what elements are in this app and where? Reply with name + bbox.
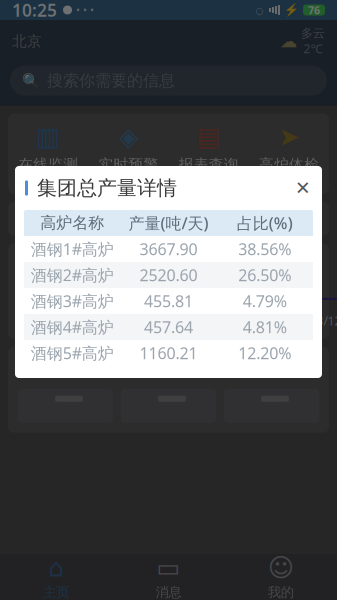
staticText: 12.20% — [238, 342, 291, 364]
staticText: 产量(吨/天) — [128, 212, 208, 234]
staticText: 10:25 — [12, 0, 57, 21]
staticText: 1160.21 — [139, 342, 197, 364]
button[interactable]: ⌂ — [0, 553, 112, 600]
staticText: 酒钢1#高炉 — [31, 238, 114, 260]
staticText: 2520.60 — [139, 264, 197, 286]
button[interactable]: 🔍 — [10, 66, 327, 96]
button[interactable]: ▤ — [168, 123, 249, 174]
button[interactable]: ➤ — [249, 123, 329, 174]
staticText: 3667.9 — [21, 281, 135, 329]
staticText: ◌ — [255, 0, 264, 20]
staticText: 酒钢4#高炉 — [31, 316, 114, 338]
staticText: 主页 — [43, 584, 69, 600]
staticText: ▼ — [306, 211, 316, 226]
staticText: 3667.90 — [139, 238, 197, 260]
staticText: 多云 — [301, 26, 325, 41]
staticText: ▤ — [197, 122, 221, 151]
staticText: ☺ — [268, 553, 294, 582]
staticText: 2℃ — [303, 41, 322, 57]
button[interactable]: ◈ — [88, 123, 168, 174]
staticText: 26.50% — [238, 264, 291, 286]
staticText: 酒钢3#高炉 — [31, 290, 114, 312]
staticText: 占比(%) — [237, 212, 293, 234]
staticText: 在线监测 — [18, 156, 78, 174]
button[interactable]: 酒钢1#高炉 — [8, 202, 329, 236]
staticText: ◈ — [119, 122, 138, 151]
staticText: 🔍 — [22, 72, 40, 89]
staticText: 酒钢5#高炉 — [31, 342, 114, 364]
staticText: 搜索你需要的信息 — [47, 71, 175, 90]
button[interactable]: ▥ — [8, 123, 88, 174]
staticText: 查看更多 — [256, 362, 316, 380]
staticText: 酒钢1#高炉 — [21, 207, 110, 230]
staticText: 38.56% — [238, 238, 291, 260]
staticText: 4.79% — [243, 290, 287, 312]
staticText: 03/12 — [309, 313, 337, 329]
staticText: 76 — [308, 3, 320, 17]
staticText: ⌂ — [48, 553, 64, 582]
staticText: 03/08 — [223, 313, 255, 329]
staticText: 2020-03-13 10:24:50 — [102, 360, 236, 380]
staticText: 455.81 — [144, 290, 193, 312]
button[interactable]: ▭ — [112, 553, 225, 600]
staticText: 03/06 — [180, 313, 212, 329]
staticText: 北京 — [12, 32, 42, 50]
staticText: ✕ — [295, 177, 311, 199]
button[interactable]: ☺ — [225, 553, 337, 600]
staticText: ⚡ — [284, 3, 299, 17]
staticText: 集团总产量详情 — [37, 176, 177, 200]
staticText: ☁ — [280, 31, 297, 51]
staticText: 在线监测 — [21, 357, 97, 380]
staticText: • • • — [76, 3, 94, 17]
staticText: 吨/天 — [139, 309, 167, 325]
staticText: 实时预警 — [98, 156, 158, 174]
staticText: 高炉体检 — [259, 156, 319, 174]
staticText: 报表查询 — [179, 156, 239, 174]
staticText: ▭ — [156, 553, 180, 582]
staticText: 高炉名称 — [40, 213, 104, 233]
staticText: 03/10 — [266, 313, 298, 329]
staticText: 457.64 — [144, 316, 193, 338]
staticText: 我的 — [268, 584, 294, 600]
staticText: 4.81% — [243, 316, 287, 338]
staticText: ▥ — [36, 122, 60, 151]
staticText: ➤ — [278, 122, 299, 151]
button[interactable]: 查看更多 — [256, 362, 316, 380]
button[interactable]: Close — [290, 175, 316, 201]
staticText: 昨日产量 — [21, 254, 89, 275]
staticText: 酒钢2#高炉 — [31, 264, 114, 286]
staticText: 消息 — [155, 584, 181, 600]
